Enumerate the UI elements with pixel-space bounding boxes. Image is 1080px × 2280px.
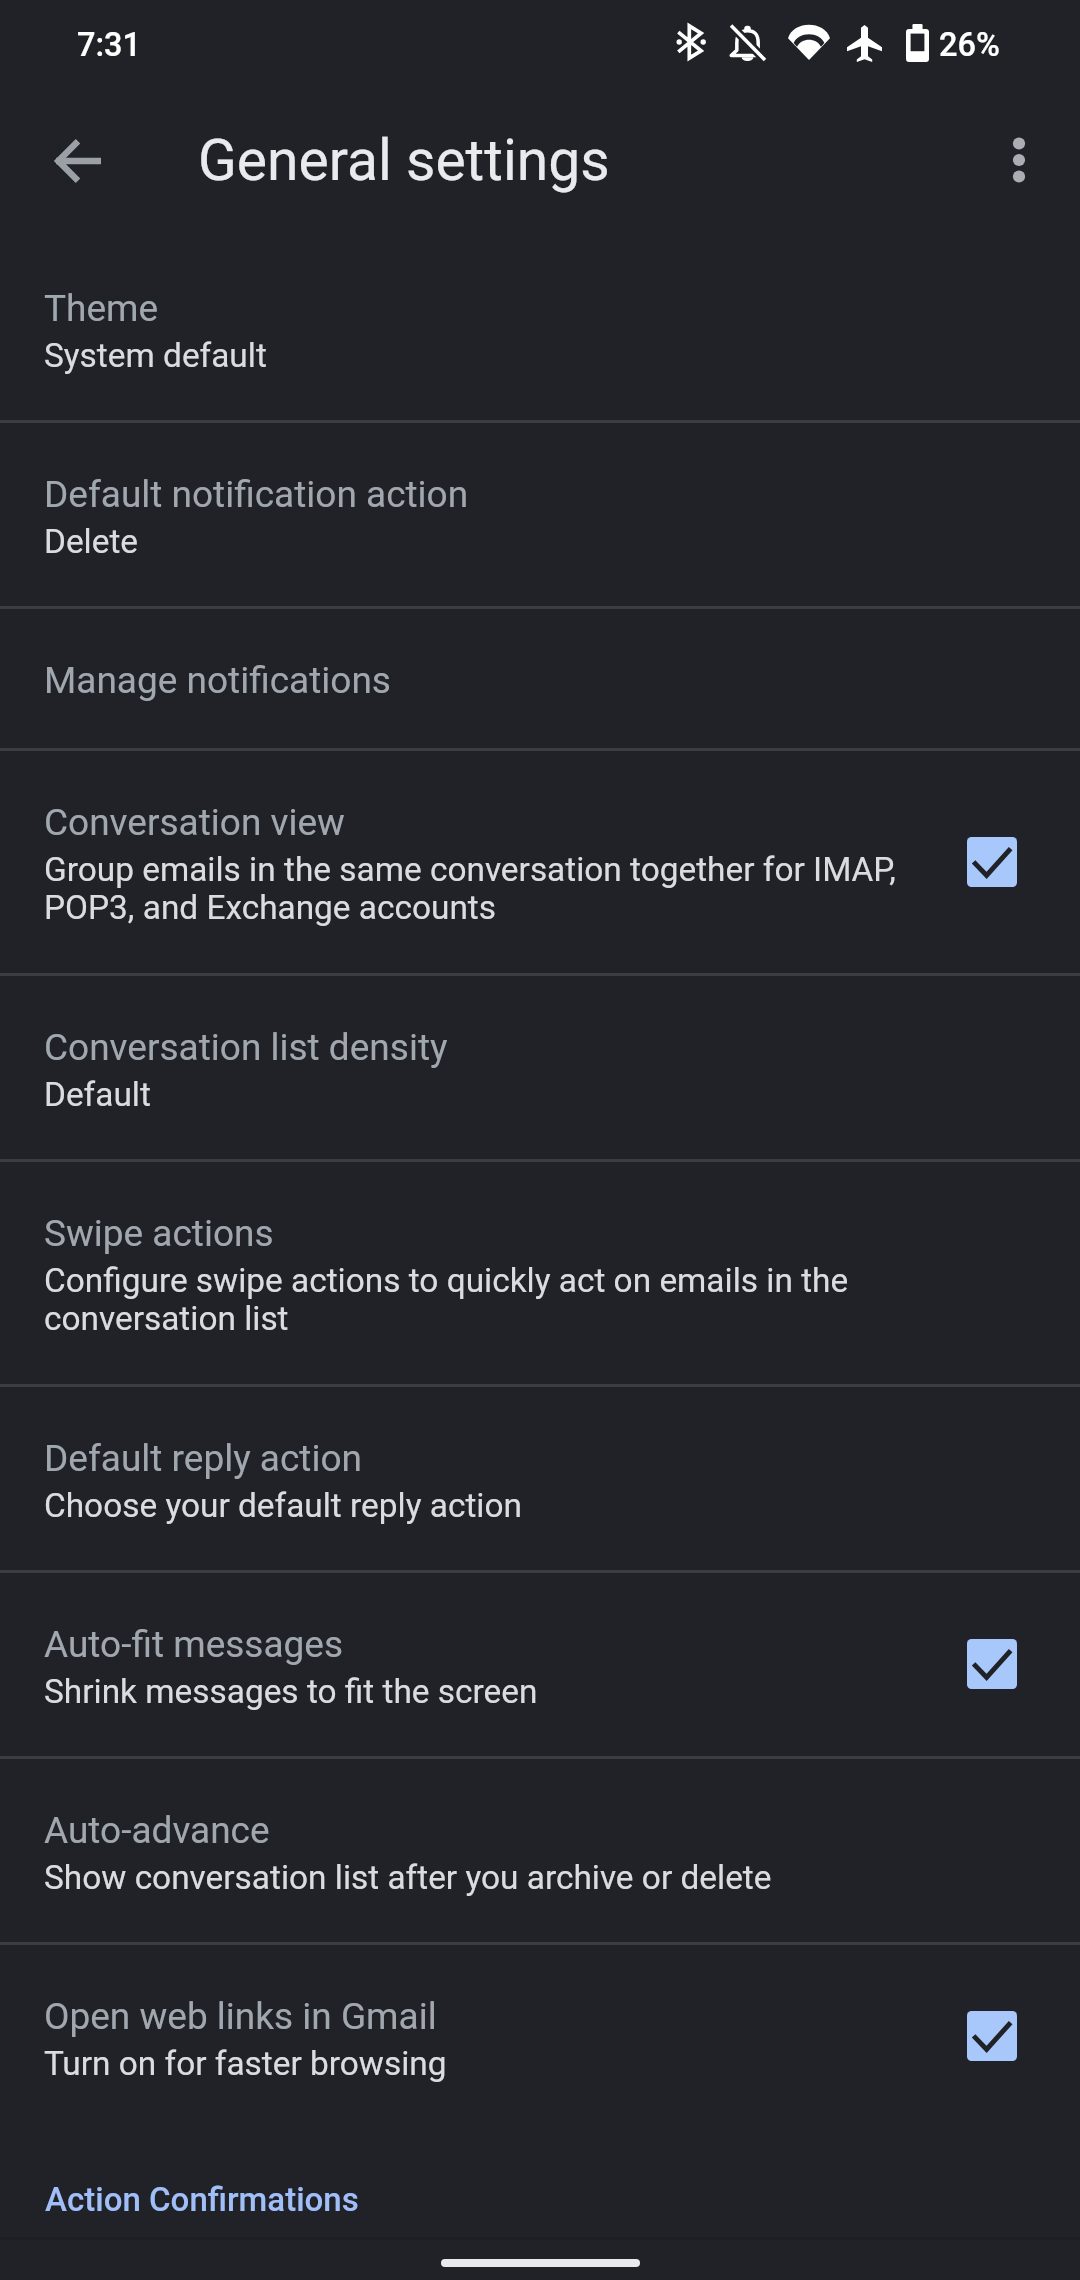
button[interactable]: Auto-fit messages [0, 1573, 1080, 1759]
button[interactable]: Open web links in Gmail [0, 1945, 1080, 2131]
staticText: Action Confirmations [45, 2180, 359, 2219]
staticText: 26% [939, 26, 1000, 64]
staticText: Turn on for faster browsing [44, 2045, 447, 2083]
staticText: Show conversation list after you archive… [44, 1859, 772, 1897]
button[interactable]: Conversation view [0, 751, 1080, 976]
button[interactable]: Action Confirmations [0, 2131, 1080, 2237]
staticText: Default notification action [44, 472, 469, 516]
button[interactable]: Conversation view, checked [942, 812, 1042, 912]
button[interactable]: Auto-fit messages, checked [942, 1614, 1042, 1714]
staticText: Auto-advance [44, 1808, 270, 1852]
button[interactable]: Auto-advance [0, 1759, 1080, 1945]
staticText: Conversation list density [44, 1025, 448, 1069]
staticText: Shrink messages to fit the screen [44, 1673, 538, 1711]
staticText: Default [44, 1076, 151, 1114]
staticText: Manage notifications [44, 658, 391, 702]
button[interactable]: Manage notifications [0, 609, 1080, 751]
staticText: Delete [44, 523, 139, 561]
button[interactable]: Theme [0, 237, 1080, 423]
button[interactable]: More options [969, 110, 1069, 210]
button[interactable]: Open web links in Gmail, checked [942, 1986, 1042, 2086]
staticText: Configure swipe actions to quickly act o… [44, 1262, 849, 1300]
staticText: System default [44, 337, 267, 375]
staticText: POP3, and Exchange accounts [44, 889, 497, 927]
staticText: Group emails in the same conversation to… [44, 851, 896, 889]
staticText: Default reply action [44, 1436, 362, 1480]
staticText: 7:31 [77, 26, 142, 64]
staticText: Open web links in Gmail [44, 1994, 437, 2038]
staticText: General settings [198, 127, 610, 194]
staticText: conversation list [44, 1300, 289, 1338]
button[interactable]: Back [28, 111, 128, 211]
staticText: Theme [44, 286, 159, 330]
button[interactable]: Swipe actions [0, 1162, 1080, 1387]
staticText: Conversation view [44, 800, 345, 844]
staticText: Swipe actions [44, 1211, 274, 1255]
button[interactable]: Default reply action [0, 1387, 1080, 1573]
button[interactable]: Default notification action [0, 423, 1080, 609]
staticText: Choose your default reply action [44, 1487, 522, 1525]
staticText: Auto-fit messages [44, 1622, 344, 1666]
button[interactable]: Conversation list density [0, 976, 1080, 1162]
